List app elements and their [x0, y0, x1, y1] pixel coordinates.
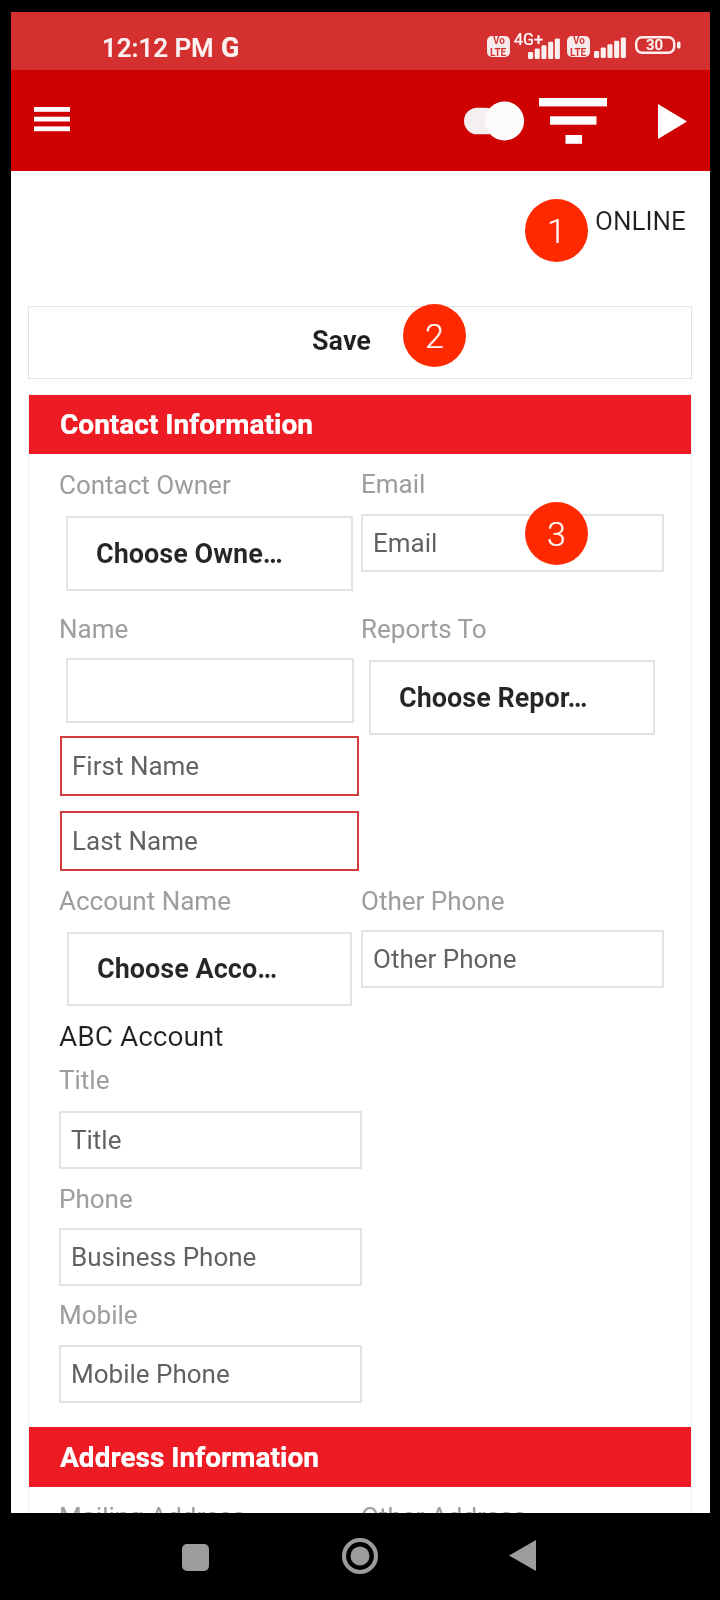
- button[interactable]: Back: [487, 1520, 558, 1591]
- button[interactable]: Home: [324, 1520, 395, 1591]
- staticText: Mailing Address: [59, 1502, 246, 1532]
- staticText: Choose Owne…: [96, 538, 283, 570]
- button[interactable]: [28, 306, 692, 379]
- staticText: Choose Repor…: [399, 682, 588, 714]
- staticText: 12:12 PM: [102, 33, 214, 63]
- staticText: Mobile Phone: [71, 1359, 230, 1389]
- button[interactable]: Online status: [521, 195, 693, 265]
- staticText: Other Address: [361, 1502, 527, 1532]
- button[interactable]: Choose Repor…: [369, 660, 655, 735]
- staticText: Reports To: [361, 614, 487, 644]
- staticText: Phone: [59, 1184, 133, 1214]
- staticText: LTE: [570, 47, 587, 56]
- button[interactable]: Mobile Phone: [59, 1345, 362, 1403]
- staticText: 3: [547, 514, 566, 554]
- staticText: Title: [71, 1125, 122, 1155]
- staticText: Mobile: [59, 1300, 138, 1330]
- button[interactable]: [66, 658, 354, 723]
- staticText: Choose Acco…: [97, 953, 278, 985]
- staticText: Contact Information: [60, 408, 313, 441]
- staticText: Address Information: [60, 1441, 319, 1474]
- button[interactable]: Recent apps: [160, 1522, 231, 1593]
- button[interactable]: Play: [637, 86, 707, 156]
- button[interactable]: Open navigation menu: [22, 91, 82, 151]
- staticText: 2: [425, 316, 444, 356]
- staticText: Business Phone: [71, 1242, 257, 1272]
- button[interactable]: Email: [361, 514, 664, 572]
- staticText: Other Phone: [373, 944, 517, 974]
- staticText: Vo: [573, 35, 585, 47]
- staticText: Account Name: [59, 886, 231, 916]
- staticText: Vo: [493, 35, 505, 47]
- button[interactable]: Title: [59, 1111, 362, 1169]
- staticText: Title: [59, 1065, 110, 1095]
- staticText: LTE: [490, 47, 507, 56]
- staticText: Name: [59, 614, 129, 644]
- button[interactable]: Filter: [533, 86, 613, 156]
- button[interactable]: Other Phone: [361, 930, 664, 988]
- button[interactable]: Toggle online: [454, 86, 534, 156]
- button[interactable]: Last Name: [60, 811, 359, 871]
- staticText: First Name: [72, 751, 200, 781]
- staticText: G: [221, 32, 240, 64]
- staticText: Save: [312, 325, 371, 357]
- staticText: Last Name: [72, 826, 198, 856]
- staticText: Email: [361, 469, 426, 499]
- button[interactable]: First Name: [60, 736, 359, 796]
- staticText: ONLINE: [595, 206, 686, 236]
- button[interactable]: Choose Acco…: [67, 932, 352, 1006]
- staticText: Email: [373, 528, 438, 558]
- staticText: 1: [547, 211, 566, 251]
- staticText: Other Phone: [361, 886, 505, 916]
- staticText: ABC Account: [59, 1020, 224, 1053]
- staticText: Contact Owner: [59, 470, 231, 500]
- staticText: 30: [646, 36, 664, 54]
- staticText: 4G+: [514, 30, 543, 49]
- button[interactable]: Business Phone: [59, 1228, 362, 1286]
- button[interactable]: Choose Owne…: [66, 516, 353, 591]
